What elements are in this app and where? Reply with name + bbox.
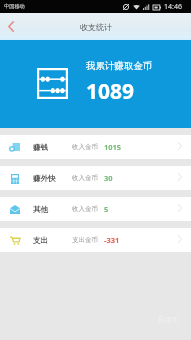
button[interactable]: 赚外快 [0,166,191,190]
staticText: 5 [104,204,109,214]
button[interactable]: Back [0,13,24,40]
staticText: 1089 [86,77,135,106]
staticText: 赚钱 [33,143,48,152]
staticText: 我累计赚取金币 [86,60,153,72]
staticText: 中国移动 [4,3,25,10]
staticText: 收入金币 [72,174,98,182]
staticText: -331 [104,235,120,245]
button[interactable]: 支出 [0,228,191,252]
staticText: 支出金币 [72,236,98,244]
staticText: 1015 [104,142,122,152]
staticText: 14:46 [164,2,182,12]
button[interactable]: 赚钱 [0,135,191,159]
staticText: 其他 [33,205,48,214]
staticText: 支出 [33,236,48,245]
staticText: 收入金币 [72,143,98,151]
button[interactable]: 其他 [0,197,191,221]
staticText: 30 [104,173,113,183]
staticText: 赚外快 [33,174,56,183]
staticText: 收支统计 [80,22,112,32]
staticText: 收入金币 [72,205,98,213]
